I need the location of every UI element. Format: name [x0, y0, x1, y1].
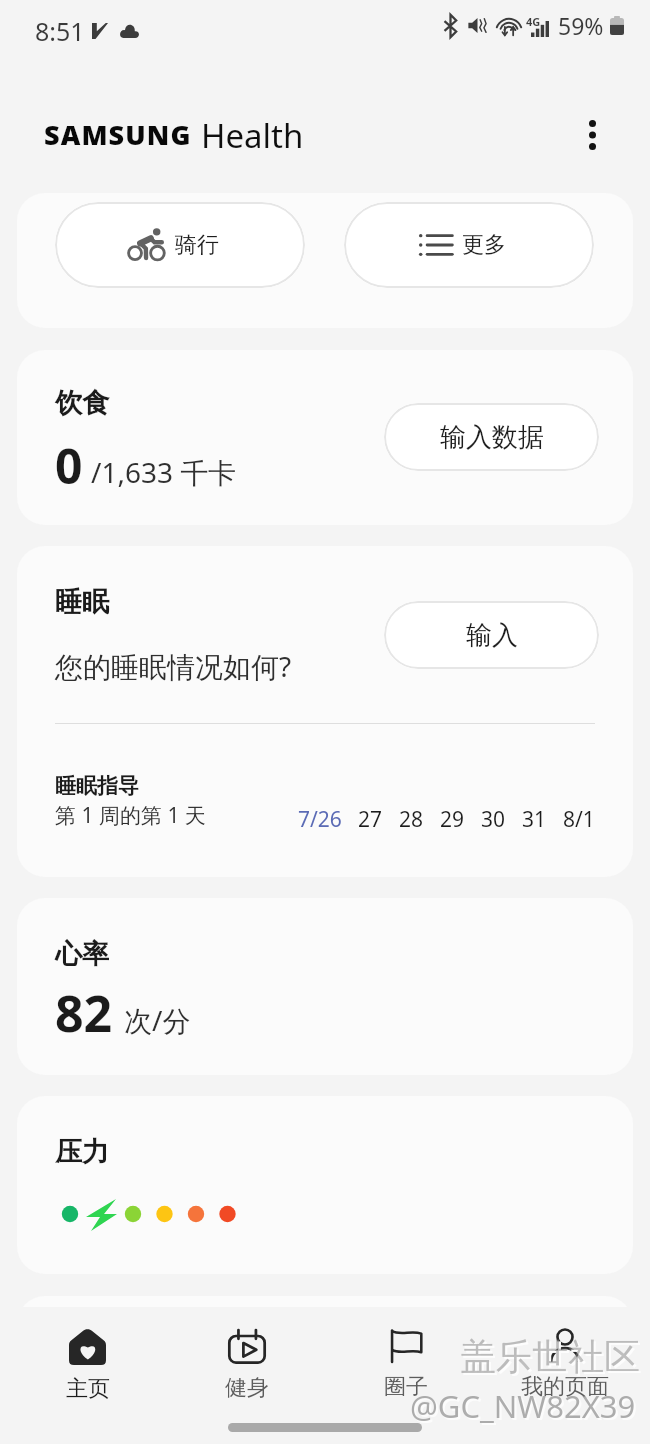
staticText: 27 [358, 805, 383, 834]
staticText: 心率 [55, 937, 109, 971]
button[interactable]: 骑行 [55, 202, 305, 288]
button[interactable]: 输入数据 [384, 403, 599, 471]
staticText: @GC_NW82X39 [410, 1385, 636, 1427]
staticText: 盖乐世社区 [460, 1334, 640, 1379]
staticText: 第 1 周的第 1 天 [55, 801, 206, 830]
staticText: 31 [522, 805, 547, 834]
button[interactable]: 主页 [8, 1323, 167, 1409]
staticText: 您的睡眠情况如何? [55, 647, 292, 685]
staticText: 8:51 [35, 14, 85, 48]
staticText: 健身 [225, 1374, 269, 1402]
staticText: 输入 [466, 619, 518, 652]
button[interactable]: 压力 [17, 1096, 633, 1274]
staticText: 28 [399, 805, 424, 834]
staticText: 30 [481, 805, 506, 834]
button[interactable]: 心率 [17, 898, 633, 1075]
staticText: Health [201, 113, 304, 158]
staticText: /1,633 千卡 [91, 453, 237, 491]
button[interactable]: More options [564, 107, 620, 163]
button[interactable]: 更多 [344, 202, 594, 288]
staticText: 4G [526, 14, 541, 29]
staticText: 压力 [55, 1135, 109, 1169]
staticText: 我的页面 [521, 1373, 609, 1401]
staticText: 盖乐世社区 [462, 1336, 642, 1381]
staticText: 饮食 [55, 386, 109, 420]
staticText: 圈子 [384, 1373, 428, 1401]
staticText: 睡眠 [55, 585, 109, 619]
staticText: 29 [440, 805, 465, 834]
staticText: 0 [55, 433, 83, 498]
staticText: 82 [55, 979, 113, 1047]
button[interactable]: 饮食 [17, 350, 633, 525]
staticText: 骑行 [175, 231, 219, 259]
staticText: 8/1 [563, 805, 595, 834]
staticText: 更多 [462, 231, 506, 259]
staticText: @GC_NW82X39 [412, 1387, 638, 1429]
staticText: 7/26 [298, 805, 342, 834]
button[interactable]: 输入 [384, 601, 599, 669]
staticText: SAMSUNG [44, 116, 192, 153]
staticText: 59% [558, 10, 604, 41]
staticText: 次/分 [124, 1001, 191, 1039]
staticText: 睡眠指导 [55, 773, 139, 799]
staticText: 输入数据 [440, 421, 544, 454]
button[interactable]: 圈子 [326, 1323, 485, 1407]
button[interactable]: 我的页面 [485, 1323, 644, 1407]
button[interactable]: 健身 [167, 1323, 326, 1408]
staticText: 主页 [66, 1375, 110, 1403]
